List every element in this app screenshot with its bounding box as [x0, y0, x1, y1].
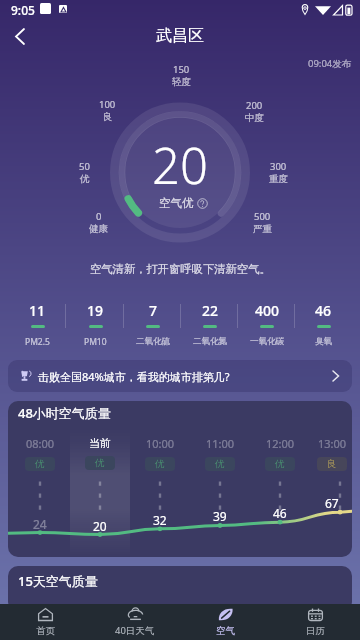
staticText: 武昌区 — [156, 26, 204, 46]
button[interactable]: 日历 — [270, 604, 360, 640]
staticText: 08:00 — [26, 436, 55, 451]
button[interactable]: 40日天气 — [90, 604, 180, 640]
staticText: 12:00 — [266, 436, 295, 451]
staticText: 中度 — [245, 112, 264, 124]
staticText: 39 — [213, 508, 227, 524]
staticText: 当前 — [89, 436, 111, 450]
staticText: 15天空气质量 — [18, 572, 98, 590]
staticText: 健康 — [89, 223, 108, 235]
staticText: 150 — [173, 63, 190, 76]
staticText: 19 — [87, 301, 104, 320]
staticText: 首页 — [36, 625, 55, 637]
staticText: PM2.5 — [25, 336, 50, 347]
staticText: 严重 — [253, 223, 272, 235]
staticText: 13:00 — [318, 436, 347, 451]
staticText: 32 — [153, 512, 167, 528]
staticText: PM10 — [84, 336, 107, 347]
staticText: 二氧化硫 — [136, 336, 170, 347]
staticText: 20 — [93, 518, 107, 534]
staticText: 46 — [315, 301, 332, 320]
button[interactable]: 空气 — [180, 604, 270, 640]
staticText: 10:00 — [146, 436, 175, 451]
staticText: 11 — [29, 301, 46, 320]
staticText: 7 — [149, 301, 158, 320]
staticText: 优 — [95, 457, 105, 469]
staticText: 空气 — [216, 625, 235, 637]
staticText: 空气优 — [159, 196, 194, 210]
staticText: 二氧化氮 — [193, 336, 227, 347]
staticText: 11:00 — [206, 436, 235, 451]
staticText: 20 — [152, 132, 208, 188]
staticText: 300 — [270, 160, 287, 173]
staticText: 200 — [246, 99, 263, 112]
staticText: 67 — [325, 495, 339, 511]
staticText: 优 — [155, 458, 165, 470]
staticText: 臭氧 — [315, 336, 332, 347]
staticText: 重度 — [269, 173, 288, 185]
staticText: 09:04发布 — [308, 57, 352, 70]
staticText: 400 — [255, 301, 280, 320]
button[interactable]: 击败全国84%城市，看我的城市排第几? — [8, 360, 352, 392]
staticText: 24 — [33, 516, 47, 532]
staticText: 优 — [275, 458, 285, 470]
staticText: 良 — [327, 458, 337, 470]
staticText: 优 — [35, 458, 45, 470]
staticText: 一氧化碳 — [250, 336, 284, 347]
staticText: 良 — [103, 111, 113, 123]
staticText: 9:05 — [11, 2, 35, 18]
staticText: 48小时空气质量 — [18, 404, 111, 422]
staticText: 0 — [96, 210, 102, 223]
staticText: 优 — [80, 173, 90, 185]
button[interactable]: Back — [0, 17, 40, 55]
staticText: 46 — [273, 505, 287, 521]
staticText: 空气清新，打开窗呼吸下清新空气。 — [90, 262, 271, 276]
staticText: 轻度 — [172, 76, 191, 88]
button[interactable]: 首页 — [0, 604, 90, 640]
staticText: 50 — [79, 160, 90, 173]
staticText: 40日天气 — [115, 624, 155, 637]
staticText: 22 — [202, 301, 219, 320]
staticText: 击败全国84%城市，看我的城市排第几? — [38, 369, 230, 384]
staticText: 优 — [215, 458, 225, 470]
staticText: 500 — [254, 210, 271, 223]
staticText: 100 — [99, 98, 116, 111]
staticText: 日历 — [306, 625, 325, 637]
